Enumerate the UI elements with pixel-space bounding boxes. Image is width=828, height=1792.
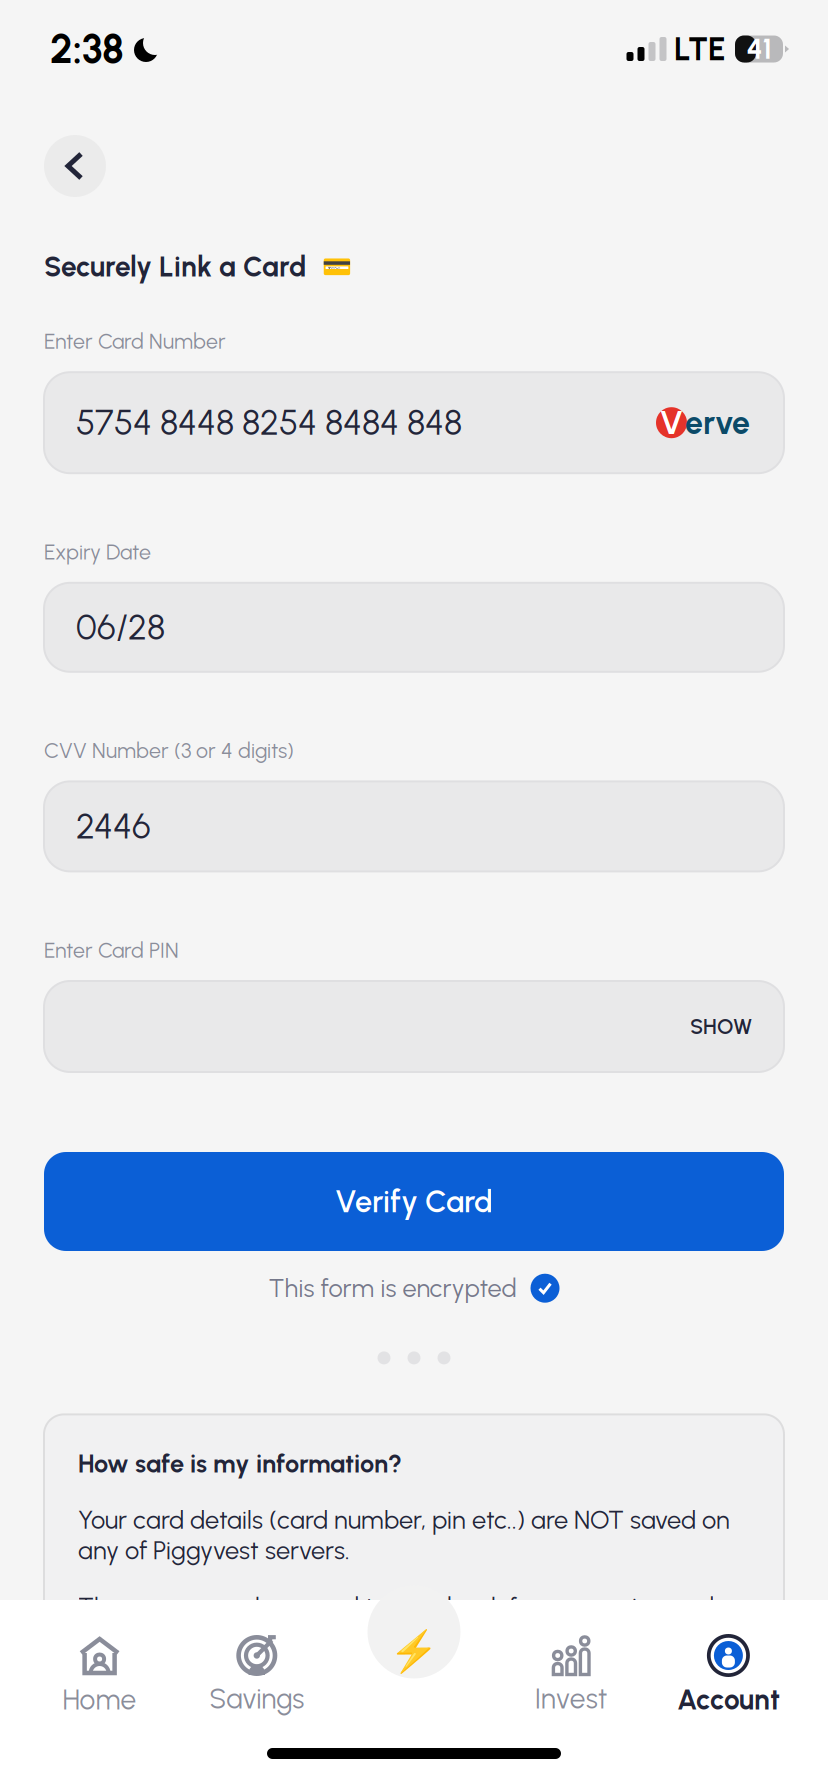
button[interactable]: Quick action xyxy=(351,1569,477,1695)
staticText: This form is encrypted xyxy=(268,1273,516,1303)
staticText: Verify Card xyxy=(335,1183,493,1220)
staticText: Enter Card Number xyxy=(44,329,226,354)
staticText: Savings xyxy=(209,1682,304,1716)
staticText: They are securely passed to your bank fo… xyxy=(78,1592,714,1652)
staticText: How safe is my information? xyxy=(78,1448,402,1479)
staticText: Enter Card PIN xyxy=(44,937,179,963)
staticText: Home xyxy=(63,1683,137,1717)
staticText: 41 xyxy=(746,32,771,66)
staticText: CVV Number (3 or 4 digits) xyxy=(44,738,294,763)
staticText: 2:38 xyxy=(50,25,124,73)
button[interactable]: Verify Card xyxy=(44,1152,784,1251)
staticText: Invest xyxy=(535,1682,608,1716)
staticText: V xyxy=(659,403,683,442)
staticText: Account xyxy=(677,1683,780,1717)
button[interactable]: Account xyxy=(650,1600,807,1731)
staticText xyxy=(410,1658,417,1692)
staticText: 06/28 xyxy=(76,606,165,648)
staticText: 2446 xyxy=(76,806,151,847)
staticText: SHOW xyxy=(690,1014,752,1039)
staticText: 💳 xyxy=(322,253,352,281)
button[interactable]: Home xyxy=(21,1600,178,1731)
staticText: LTE xyxy=(674,30,726,68)
staticText: Expiry Date xyxy=(44,539,151,565)
staticText: 5754 8448 8254 8484 848 xyxy=(76,402,462,443)
button[interactable]: Invest xyxy=(493,1601,650,1730)
button[interactable]: Savings xyxy=(178,1601,335,1730)
staticText: Your card details (card number, pin etc.… xyxy=(78,1505,730,1566)
staticText: erve xyxy=(685,403,750,442)
staticText: Securely Link a Card xyxy=(44,250,306,284)
button[interactable]: SHOW xyxy=(690,1014,752,1039)
staticText: ⚡ xyxy=(389,1628,439,1674)
button[interactable]: Back xyxy=(44,135,106,197)
